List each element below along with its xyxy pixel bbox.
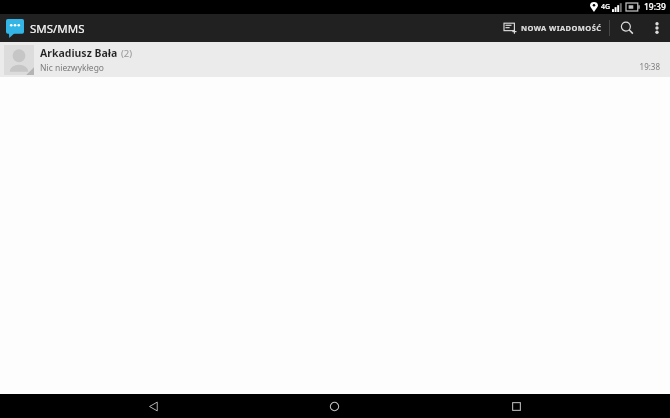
button[interactable]: Contact avatar bbox=[4, 45, 34, 75]
button[interactable]: SMS/MMS bbox=[0, 19, 93, 38]
staticText: 19:39 bbox=[644, 1, 666, 13]
staticText: 4G bbox=[601, 2, 611, 12]
button[interactable]: Search bbox=[610, 14, 644, 42]
button[interactable]: More options bbox=[644, 14, 670, 42]
staticText: Arkadiusz Bała bbox=[40, 46, 118, 60]
button[interactable]: Recent apps bbox=[488, 394, 544, 418]
button[interactable]: Contact avatar bbox=[0, 42, 670, 77]
staticText: NOWA WIADOMOŚĆ bbox=[521, 23, 602, 33]
staticText: 19:38 bbox=[639, 61, 660, 72]
staticText: Nic niezwykłego bbox=[40, 62, 105, 74]
button[interactable]: Back bbox=[125, 394, 181, 418]
staticText: (2) bbox=[121, 47, 133, 60]
staticText: SMS/MMS bbox=[30, 21, 85, 37]
button[interactable]: NOWA WIADOMOŚĆ bbox=[497, 14, 609, 42]
button[interactable]: Home bbox=[306, 394, 362, 418]
